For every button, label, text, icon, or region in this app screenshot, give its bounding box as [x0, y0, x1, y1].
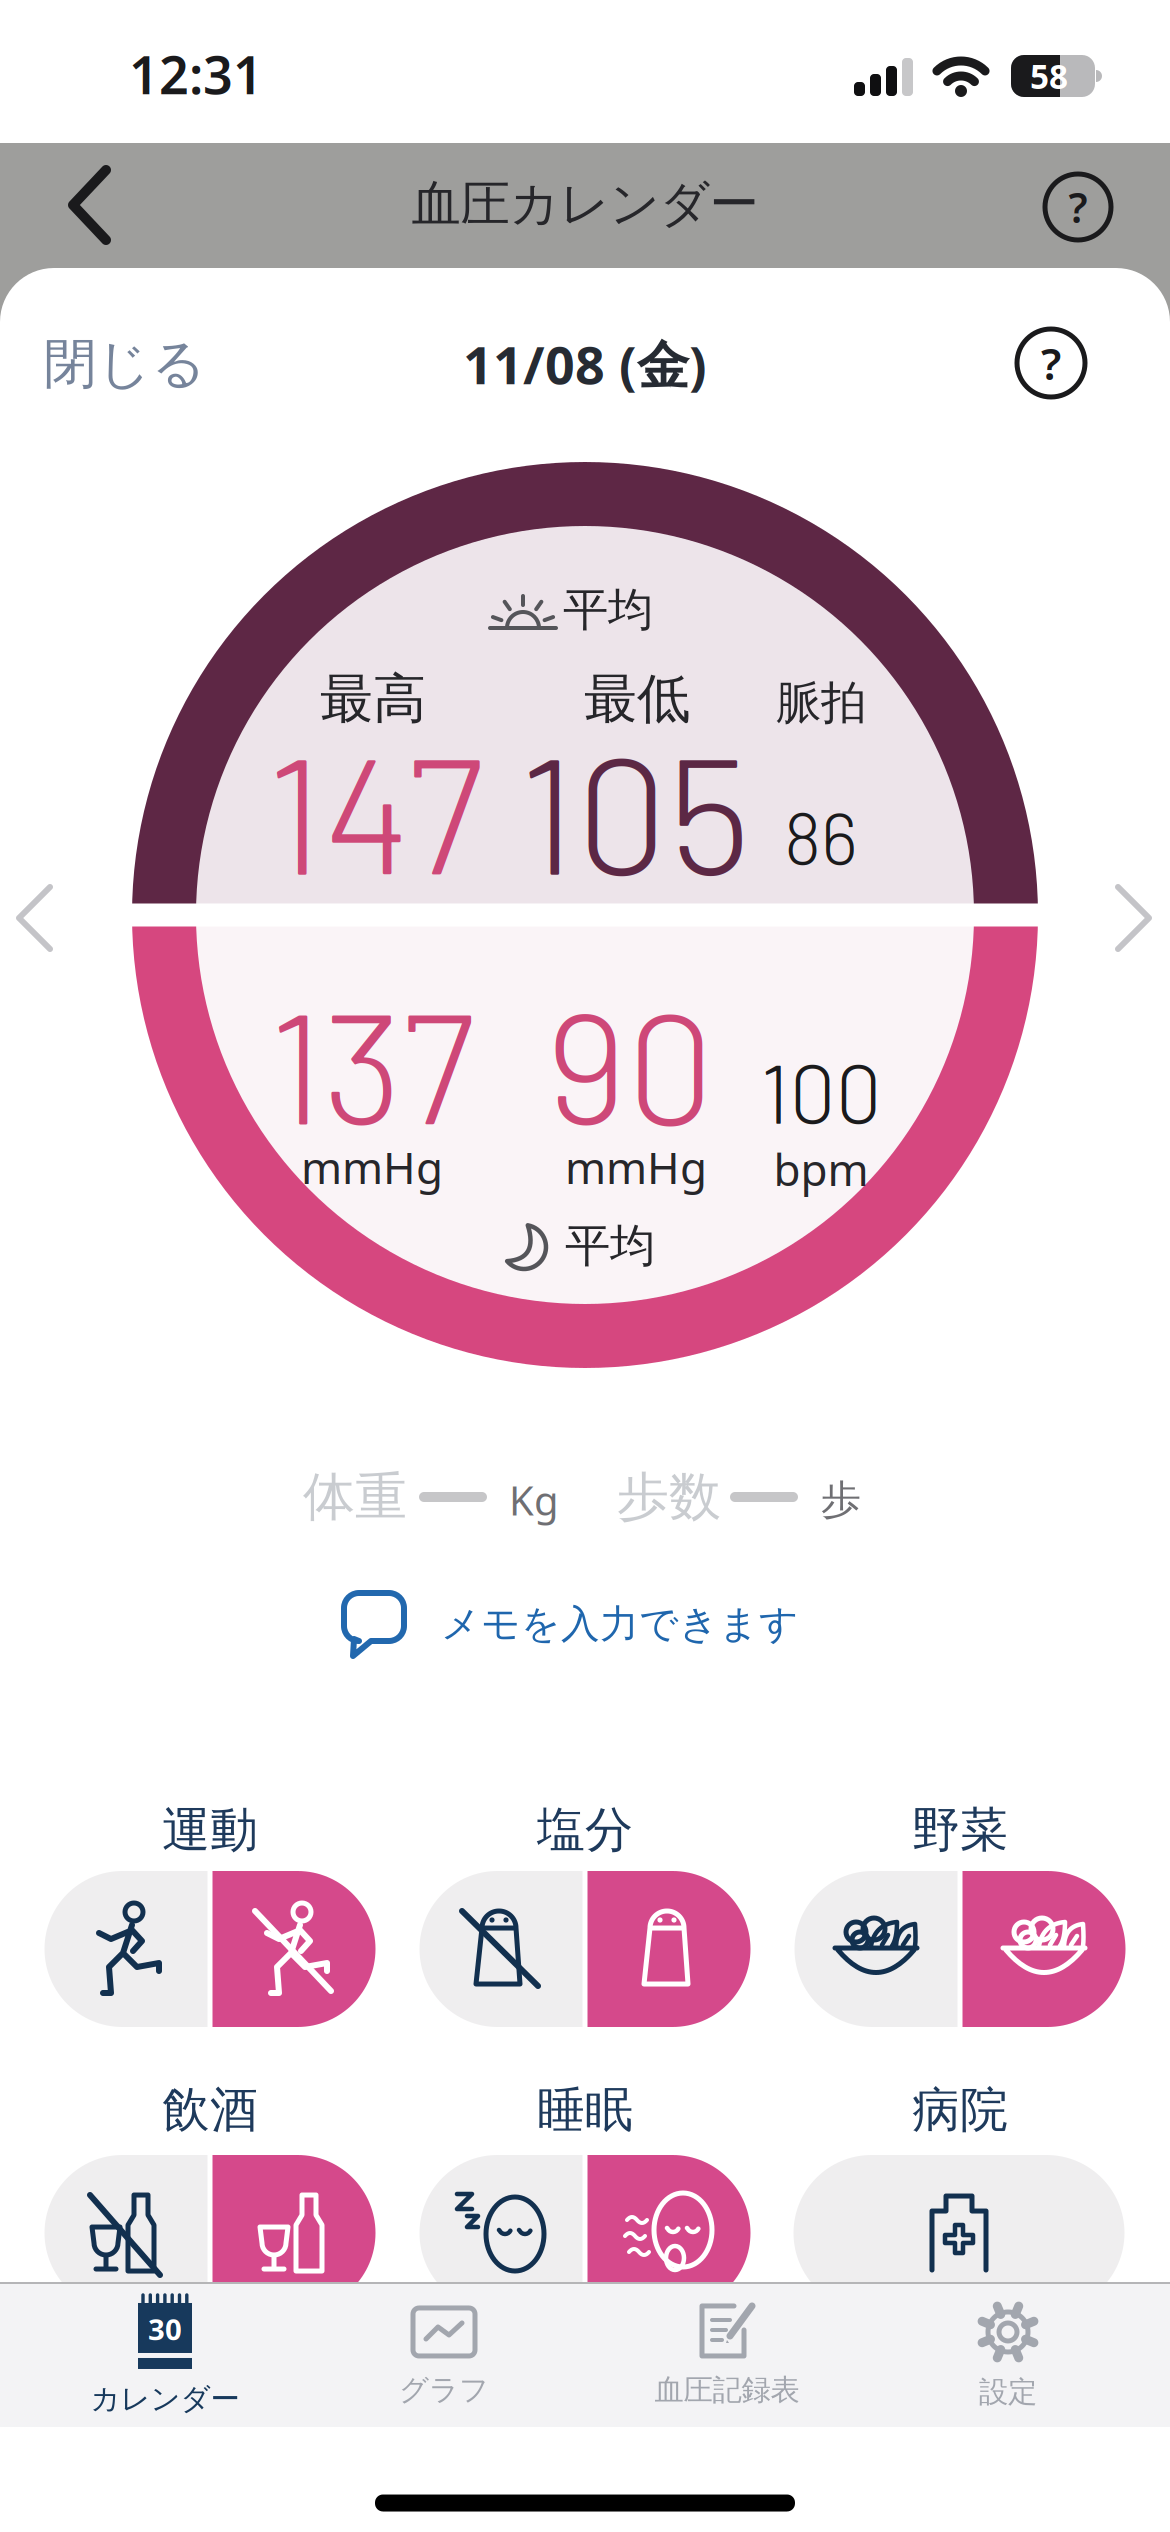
- button[interactable]: メモを入力できます: [341, 1590, 799, 1658]
- button[interactable]: Sleep: good: [419, 2155, 582, 2311]
- button[interactable]: Salt: reduced: [419, 1871, 582, 2027]
- staticText: 塩分: [537, 1800, 633, 1859]
- button[interactable]: Help: [1043, 172, 1113, 242]
- staticText: 閉じる: [43, 331, 206, 397]
- staticText: 137: [269, 968, 475, 1156]
- staticText: 睡眠: [537, 2080, 633, 2139]
- button[interactable]: 閉じる: [43, 331, 206, 397]
- staticText: ?: [1041, 334, 1061, 392]
- staticText: 野菜: [912, 1800, 1008, 1859]
- button[interactable]: Help: [1015, 327, 1087, 399]
- staticText: 86: [784, 793, 858, 879]
- staticText: 血圧記録表: [654, 2372, 799, 2408]
- staticText: カレンダー: [90, 2381, 239, 2417]
- staticText: ?: [1068, 180, 1087, 234]
- button[interactable]: Salt: not reduced: [587, 1871, 750, 2027]
- staticText: 105: [519, 711, 751, 907]
- staticText: 最高: [320, 666, 426, 732]
- staticText: グラフ: [399, 2372, 489, 2408]
- staticText: 歩: [821, 1475, 861, 1524]
- button[interactable]: 30: [90, 2295, 239, 2417]
- staticText: 90: [545, 968, 714, 1156]
- staticText: 運動: [162, 1800, 258, 1859]
- staticText: 11/08 (金): [463, 329, 707, 399]
- button[interactable]: Sleep: poor: [587, 2155, 750, 2311]
- staticText: 脈拍: [776, 675, 866, 731]
- staticText: 58: [1030, 54, 1068, 98]
- button[interactable]: Vegetables: yes: [794, 1871, 957, 2027]
- staticText: 平均: [563, 582, 653, 638]
- button[interactable]: 設定: [978, 2302, 1038, 2410]
- staticText: メモを入力できます: [441, 1600, 799, 1648]
- staticText: 平均: [565, 1218, 655, 1274]
- staticText: 歩数: [617, 1465, 721, 1529]
- staticText: mmHg: [301, 1138, 443, 1196]
- button[interactable]: Alcohol: yes: [212, 2155, 375, 2311]
- staticText: 飲酒: [162, 2080, 258, 2139]
- button[interactable]: グラフ: [399, 2308, 489, 2408]
- button[interactable]: 血圧記録表: [654, 2302, 799, 2408]
- staticText: 血圧カレンダー: [411, 174, 758, 234]
- button[interactable]: Alcohol: none: [44, 2155, 207, 2311]
- staticText: 147: [266, 711, 483, 907]
- staticText: 設定: [979, 2374, 1037, 2410]
- staticText: Kg: [509, 1473, 559, 1526]
- button[interactable]: Exercise: no: [212, 1871, 375, 2027]
- button[interactable]: Previous day: [19, 887, 53, 951]
- staticText: bpm: [773, 1140, 868, 1198]
- staticText: 体重: [303, 1465, 407, 1529]
- staticText: 30: [148, 2309, 182, 2348]
- button[interactable]: Hospital visit: [793, 2155, 1124, 2311]
- staticText: 100: [760, 1042, 881, 1140]
- button[interactable]: Exercise: yes: [44, 1871, 207, 2027]
- button[interactable]: Vegetables: no: [962, 1871, 1125, 2027]
- staticText: mmHg: [565, 1138, 707, 1196]
- staticText: 12:31: [129, 39, 263, 109]
- staticText: 最低: [584, 666, 690, 732]
- button[interactable]: Next day: [1118, 887, 1152, 951]
- button[interactable]: Back: [73, 170, 113, 244]
- staticText: 病院: [912, 2080, 1008, 2139]
